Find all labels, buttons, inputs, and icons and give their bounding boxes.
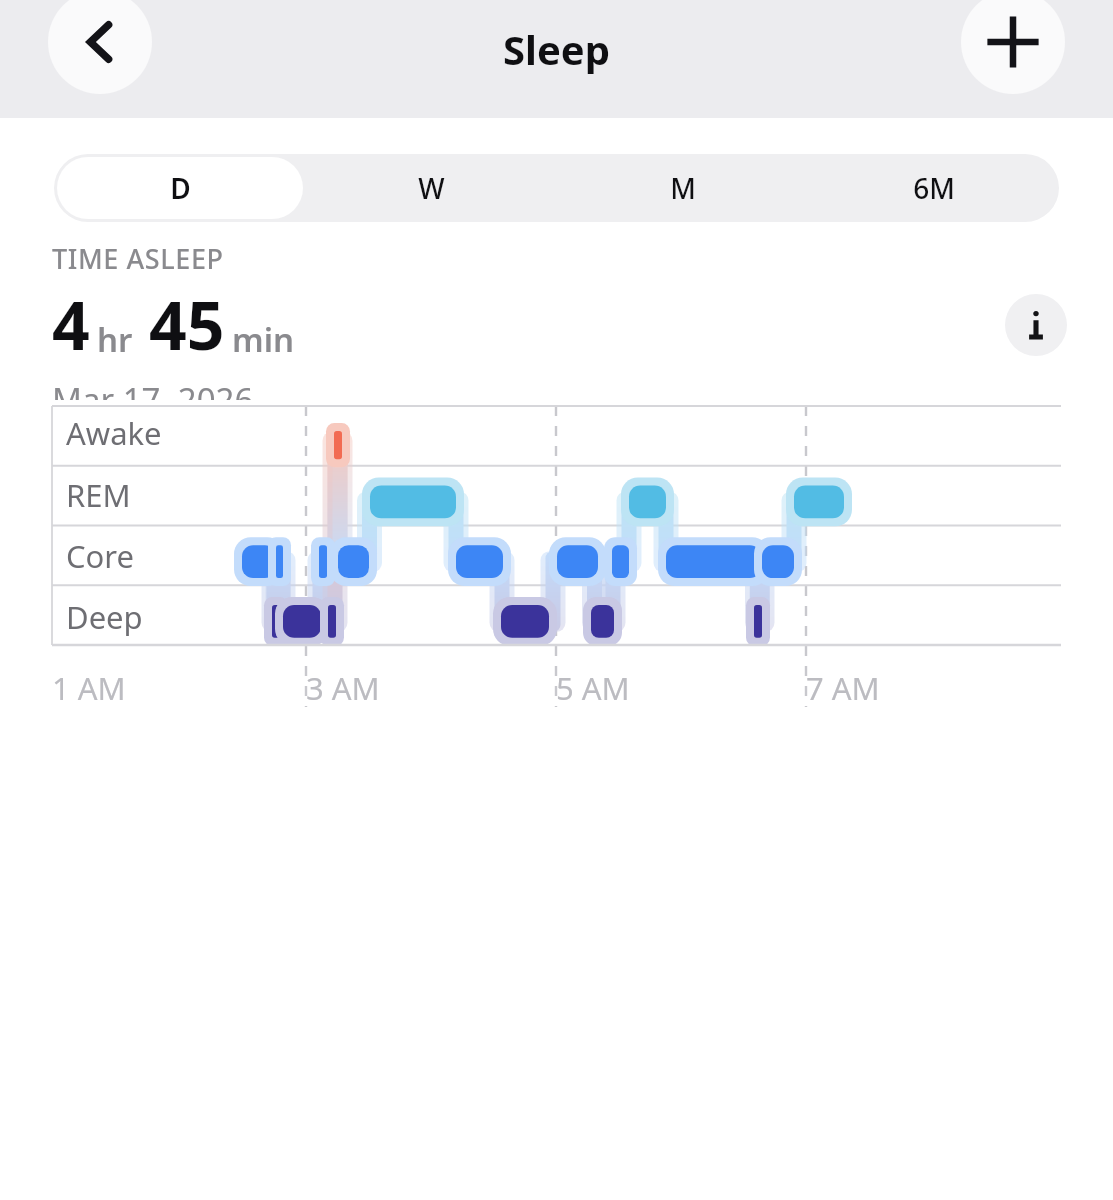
button[interactable]: 6M — [811, 157, 1056, 219]
staticText: 7 AM — [806, 667, 880, 709]
staticText: 6M — [913, 169, 955, 207]
staticText: TIME ASLEEP — [52, 240, 224, 277]
button[interactable]: Back — [48, 0, 152, 94]
staticText: min — [232, 317, 295, 362]
staticText: Deep — [66, 596, 143, 638]
staticText: D — [170, 169, 191, 207]
button[interactable]: Add — [961, 0, 1065, 94]
staticText: 1 AM — [52, 667, 126, 709]
staticText: REM — [66, 474, 131, 516]
button[interactable]: Information — [1005, 294, 1067, 356]
staticText: 5 AM — [556, 667, 630, 709]
button[interactable]: M — [560, 157, 805, 219]
staticText: 45 — [149, 279, 225, 369]
staticText: M — [670, 169, 696, 207]
staticText: Sleep — [503, 22, 610, 76]
staticText: Awake — [66, 412, 162, 454]
button[interactable]: W — [309, 157, 554, 219]
staticText: 4 — [52, 279, 90, 369]
staticText: Mar 17, 2026 — [52, 377, 254, 400]
staticText: 3 AM — [306, 667, 380, 709]
staticText: Core — [66, 535, 135, 577]
staticText: hr — [97, 317, 133, 362]
staticText: W — [418, 169, 445, 207]
button[interactable]: D — [57, 157, 303, 219]
